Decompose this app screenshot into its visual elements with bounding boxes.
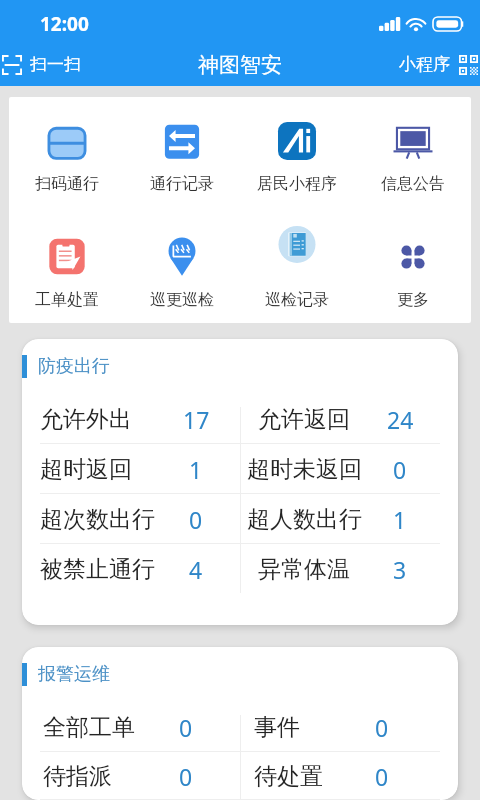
button[interactable]: 巡更巡检 [124, 242, 239, 310]
staticText: 超时未返回 [247, 455, 362, 484]
button[interactable]: 允许外出 [22, 394, 240, 444]
staticText: 4 [189, 554, 203, 585]
staticText: 防疫出行 [38, 355, 110, 378]
staticText: 17 [183, 404, 210, 435]
button[interactable]: 居民小程序 [239, 126, 355, 194]
staticText: 0 [189, 504, 203, 535]
staticText: 巡检记录 [265, 290, 329, 310]
button[interactable]: 待处置 [240, 752, 458, 800]
staticText: 超次数出行 [40, 505, 155, 534]
staticText: 小程序 [399, 54, 450, 75]
staticText: 超时返回 [40, 455, 132, 484]
staticText: 允许外出 [40, 405, 132, 434]
button[interactable]: 工单处置 [9, 242, 124, 310]
button[interactable]: 超时未返回 [240, 444, 458, 494]
staticText: 0 [375, 761, 389, 792]
button[interactable]: 被禁止通行 [22, 544, 240, 594]
staticText: 待处置 [254, 762, 323, 791]
button[interactable]: 通行记录 [124, 126, 239, 194]
staticText: 居民小程序 [257, 174, 337, 194]
staticText: 0 [179, 761, 193, 792]
button[interactable]: 超次数出行 [22, 494, 240, 544]
button[interactable]: 事件 [240, 702, 458, 752]
button[interactable]: 扫码通行 [9, 126, 124, 194]
button[interactable]: 超时返回 [22, 444, 240, 494]
button[interactable]: 全部工单 [22, 702, 240, 752]
button[interactable]: 小程序 [393, 48, 480, 81]
other: 扫一扫 [2, 55, 22, 75]
staticText: 1 [189, 454, 203, 485]
staticText: 巡更巡检 [150, 290, 214, 310]
staticText: 被禁止通行 [40, 555, 155, 584]
staticText: 扫码通行 [35, 174, 99, 194]
staticText: 待指派 [43, 762, 112, 791]
staticText: 0 [393, 454, 407, 485]
staticText: 异常体温 [258, 555, 350, 584]
staticText: 全部工单 [43, 713, 135, 742]
staticText: 超人数出行 [247, 505, 362, 534]
button[interactable]: 信息公告 [355, 126, 471, 194]
staticText: 24 [387, 404, 414, 435]
staticText: 扫一扫 [30, 54, 81, 75]
button[interactable]: 更多 [355, 242, 471, 310]
button[interactable]: 扫一扫 [0, 48, 87, 81]
staticText: 报警运维 [38, 663, 110, 686]
staticText: 12:00 [40, 11, 89, 37]
button[interactable]: 巡检记录 [239, 242, 355, 310]
button[interactable]: 待指派 [22, 752, 240, 800]
button[interactable]: 允许返回 [240, 394, 458, 444]
staticText: 3 [393, 554, 407, 585]
button[interactable]: 超人数出行 [240, 494, 458, 544]
staticText: 允许返回 [258, 405, 350, 434]
staticText: 神图智安 [198, 52, 282, 78]
staticText: 1 [393, 504, 407, 535]
staticText: 事件 [254, 713, 300, 742]
staticText: 0 [375, 712, 389, 743]
button[interactable]: 异常体温 [240, 544, 458, 594]
staticText: 0 [179, 712, 193, 743]
staticText: 信息公告 [381, 174, 445, 194]
staticText: 通行记录 [150, 174, 214, 194]
other: 小程序 [459, 55, 478, 75]
staticText: 工单处置 [35, 290, 99, 310]
staticText: 更多 [397, 290, 429, 310]
